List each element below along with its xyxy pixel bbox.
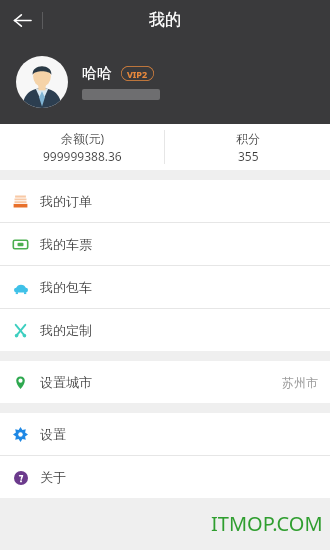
button[interactable]: 设置 xyxy=(0,413,330,455)
button[interactable]: Back xyxy=(0,0,44,40)
staticText: 哈哈 xyxy=(82,64,112,83)
button[interactable]: 积分 xyxy=(165,124,330,170)
staticText: 苏州市 xyxy=(282,375,318,390)
button[interactable]: 我的定制 xyxy=(0,309,330,351)
staticText: 我的包车 xyxy=(40,279,92,295)
button[interactable]: 我的车票 xyxy=(0,223,330,265)
button[interactable]: 我的包车 xyxy=(0,266,330,308)
staticText: VIP2 xyxy=(127,68,148,80)
staticText: 关于 xyxy=(40,469,66,485)
staticText: 999999388.36 xyxy=(43,148,122,164)
staticText: 积分 xyxy=(236,131,260,146)
staticText: 355 xyxy=(238,148,259,164)
staticText: 余额(元) xyxy=(61,130,105,146)
button[interactable]: 哈哈 xyxy=(0,40,330,124)
staticText: 我的订单 xyxy=(40,193,92,209)
button[interactable]: 我的订单 xyxy=(0,180,330,222)
staticText: 我的定制 xyxy=(40,322,92,338)
button[interactable]: 设置城市 xyxy=(0,361,330,403)
staticText: ITMOP.COM xyxy=(211,510,323,537)
button[interactable]: 关于 xyxy=(0,456,330,498)
staticText: 设置城市 xyxy=(40,374,92,390)
button[interactable]: 余额(元) xyxy=(0,124,164,170)
staticText: 我的车票 xyxy=(40,236,92,252)
staticText: 我的 xyxy=(149,10,181,30)
staticText: 设置 xyxy=(40,426,66,442)
